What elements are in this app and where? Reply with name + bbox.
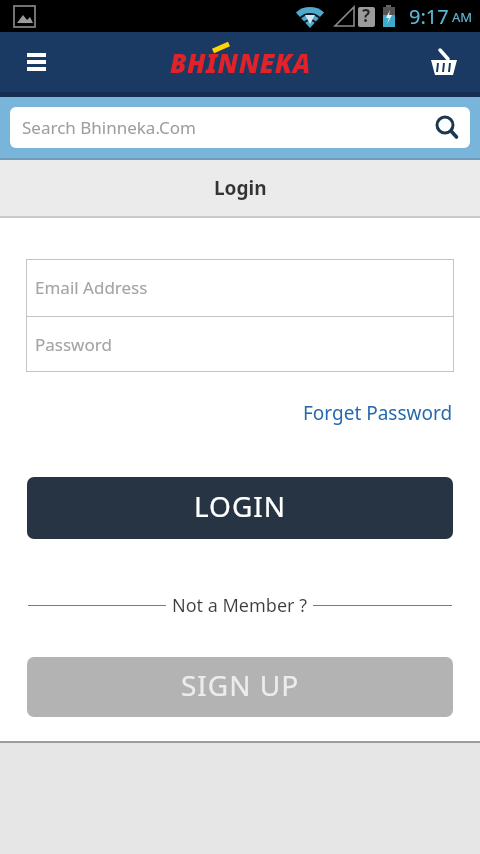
- button[interactable]: LOGIN: [27, 477, 453, 539]
- staticText: Not a Member ?: [172, 593, 307, 618]
- staticText: Email Address: [35, 276, 148, 299]
- button[interactable]: [430, 44, 466, 80]
- button[interactable]: Search Bhinneka.Com: [10, 107, 470, 148]
- staticText: Forget Password: [303, 400, 453, 426]
- staticText: AM: [452, 8, 473, 26]
- staticText: Login: [214, 175, 267, 201]
- button[interactable]: Email Address: [26, 259, 454, 316]
- staticText: BHINNEKA: [170, 45, 311, 80]
- staticText: SIGN UP: [181, 666, 300, 704]
- staticText: Search Bhinneka.Com: [22, 116, 197, 139]
- button[interactable]: [20, 46, 52, 78]
- staticText: ?: [362, 4, 371, 27]
- button[interactable]: Password: [26, 317, 454, 372]
- button[interactable]: Forget Password: [303, 400, 453, 426]
- button[interactable]: SIGN UP: [27, 657, 453, 717]
- staticText: LOGIN: [194, 487, 287, 525]
- staticText: Password: [35, 333, 112, 356]
- staticText: 9:17: [409, 3, 449, 30]
